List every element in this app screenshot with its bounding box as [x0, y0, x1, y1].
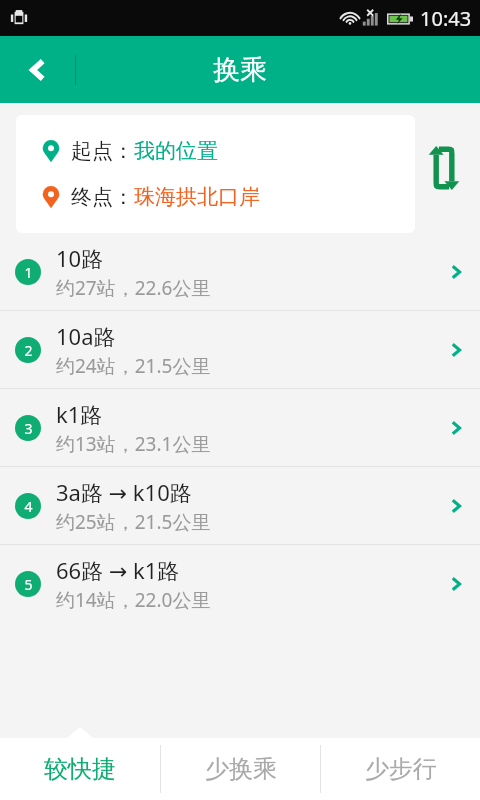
staticText: 少步行 — [365, 754, 437, 784]
staticText: 较快捷 — [44, 754, 116, 784]
staticText: 3 — [24, 419, 33, 438]
button[interactable]: 3 — [0, 389, 480, 466]
staticText: 66路 → k1路 — [56, 555, 180, 585]
staticText: 约14站，22.0公里 — [56, 587, 211, 613]
button[interactable]: 起点： — [16, 115, 415, 233]
staticText: 我的位置 — [134, 138, 218, 164]
staticText: 3a路 → k10路 — [56, 477, 192, 507]
staticText: 换乘 — [213, 53, 267, 87]
staticText: 约13站，23.1公里 — [56, 431, 211, 457]
staticText: 起点： — [71, 138, 134, 164]
button[interactable]: Swap start and destination — [422, 146, 466, 190]
button[interactable]: 少步行 — [321, 738, 480, 800]
button[interactable]: 较快捷 — [0, 738, 160, 800]
button[interactable]: 4 — [0, 467, 480, 544]
staticText: 10:43 — [420, 5, 472, 32]
staticText: 约25站，21.5公里 — [56, 509, 211, 535]
staticText: 10路 — [56, 243, 104, 273]
button[interactable]: 5 — [0, 545, 480, 622]
staticText: 4 — [24, 497, 33, 516]
staticText: 少换乘 — [205, 754, 277, 784]
button[interactable]: 少换乘 — [161, 738, 320, 800]
staticText: 约24站，21.5公里 — [56, 353, 211, 379]
button[interactable]: Back — [0, 36, 76, 103]
button[interactable]: 2 — [0, 311, 480, 388]
staticText: 5 — [24, 575, 33, 594]
button[interactable]: 1 — [0, 233, 480, 310]
staticText: 10a路 — [56, 321, 116, 351]
staticText: 2 — [24, 341, 33, 360]
staticText: 终点： — [71, 184, 134, 210]
staticText: k1路 — [56, 399, 103, 429]
staticText: 珠海拱北口岸 — [134, 184, 260, 210]
staticText: 1 — [24, 263, 33, 282]
staticText: 约27站，22.6公里 — [56, 275, 211, 301]
